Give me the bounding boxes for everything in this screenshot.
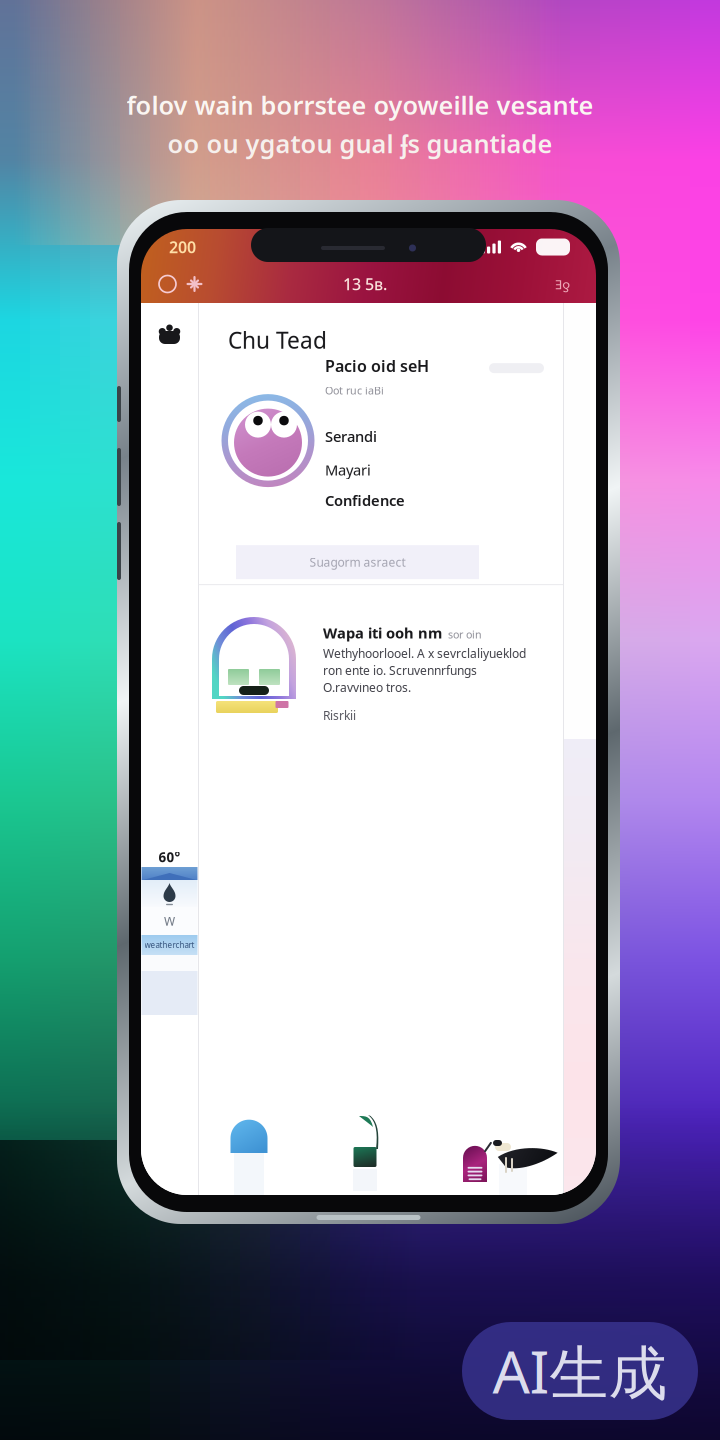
staticText: ron ente io. Scruvennrfungs	[323, 662, 477, 678]
staticText: Risrkii	[323, 707, 356, 723]
staticText: Wethyhoorlooel. A x sevrclaliyueklod	[323, 645, 526, 661]
staticText: folov wain borrstee oyoweille vesante	[126, 88, 593, 122]
button[interactable]: Discover tab	[348, 1111, 382, 1193]
staticText: Pacio oid seH	[325, 355, 429, 376]
staticText: O.ravvineo tros.	[323, 679, 411, 695]
staticText: Confidence	[325, 490, 405, 510]
staticText: weatherchart	[144, 940, 194, 950]
button[interactable]: Profile tab	[455, 1111, 551, 1193]
staticText: Oot ruc iaBi	[325, 383, 384, 397]
staticText: Serandi	[325, 426, 377, 446]
button[interactable]: Home	[141, 303, 198, 358]
staticText: W	[164, 913, 175, 929]
staticText: sor oin	[448, 627, 482, 641]
button[interactable]: More	[555, 267, 596, 301]
button[interactable]: Capture	[141, 267, 203, 300]
staticText: oo ou ygatou gual ʄs guantiade	[167, 127, 552, 160]
staticText: Chu Tead	[228, 325, 327, 355]
staticText: Mayari	[325, 460, 371, 479]
button[interactable]: AI generated	[462, 1322, 698, 1420]
staticText: Suagorm asraect	[309, 554, 405, 570]
staticText: Ǝƍ	[555, 275, 570, 293]
staticText: 60°	[158, 848, 180, 866]
staticText: Wapa iti ooh nm	[323, 623, 442, 642]
button[interactable]: Home tab	[228, 1111, 270, 1193]
staticText: AI生成	[492, 1332, 667, 1410]
staticText: 200	[169, 236, 196, 258]
staticText: 13 5ʙ.	[343, 273, 387, 295]
